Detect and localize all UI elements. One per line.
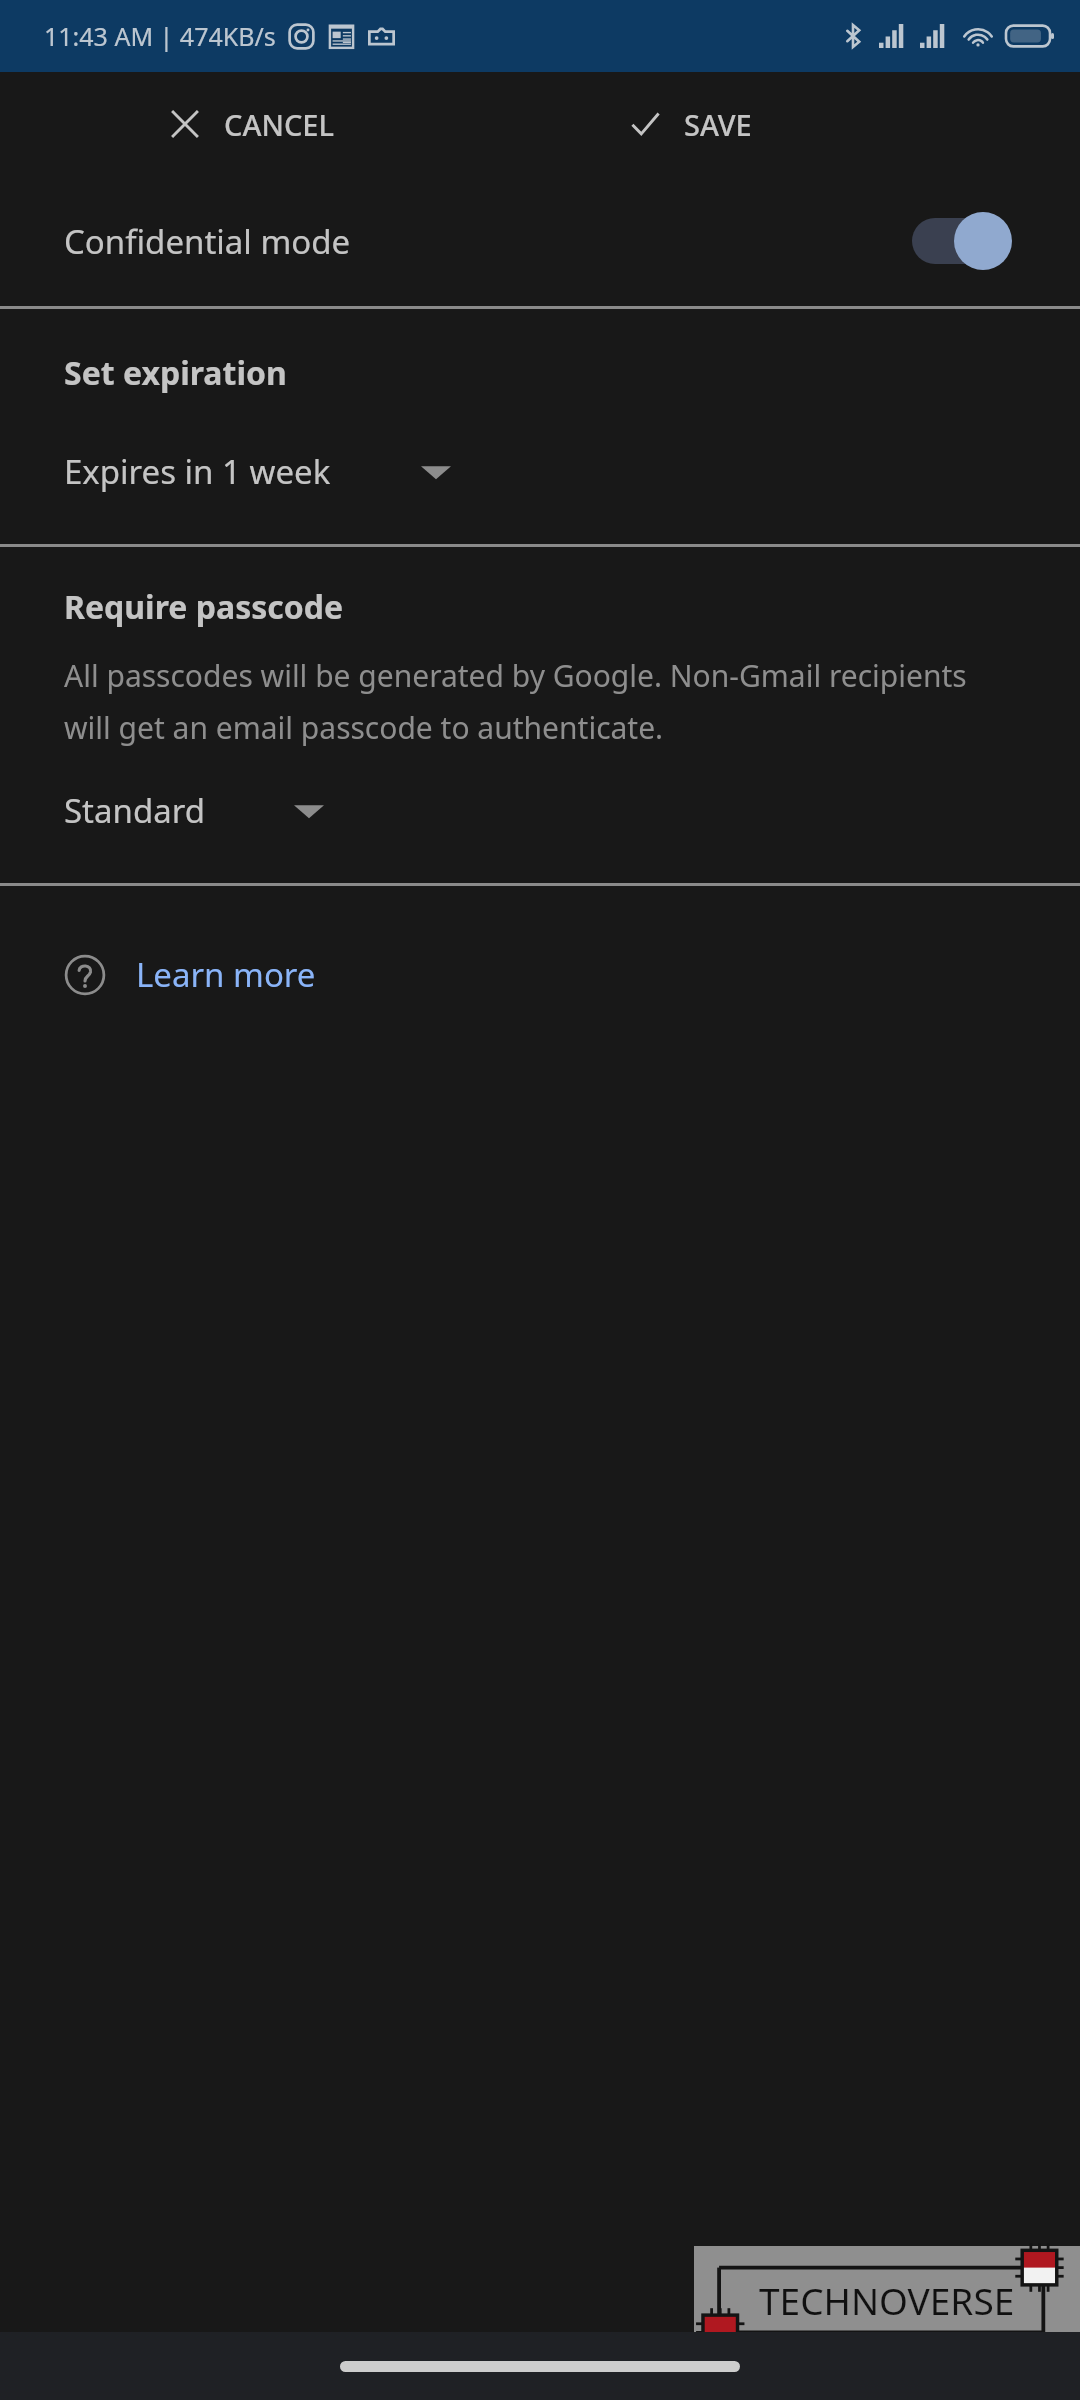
staticText: Confidential mode [64, 219, 351, 264]
staticText: SAVE [684, 105, 752, 144]
button[interactable]: Expires in 1 week [64, 443, 451, 500]
staticText: Standard [64, 788, 206, 833]
button[interactable]: Cancel [0, 72, 540, 176]
other: Cancel [168, 107, 202, 141]
staticText: Set expiration [64, 351, 287, 395]
staticText: Expires in 1 week [64, 449, 331, 494]
staticText: TECHNOVERSE [759, 2275, 1015, 2325]
staticText: All passcodes will be generated by Googl… [64, 655, 1016, 748]
staticText: 11:43 AM | 474KB/s [44, 19, 276, 53]
button[interactable]: Confidential mode [0, 176, 1080, 306]
staticText: CANCEL [224, 105, 334, 144]
button[interactable]: Save [540, 72, 1080, 176]
staticText: Require passcode [64, 585, 344, 629]
button[interactable]: Learn more [0, 886, 1080, 1027]
other: Save [628, 107, 662, 141]
button[interactable]: Standard [64, 782, 324, 839]
staticText: Learn more [136, 952, 316, 997]
